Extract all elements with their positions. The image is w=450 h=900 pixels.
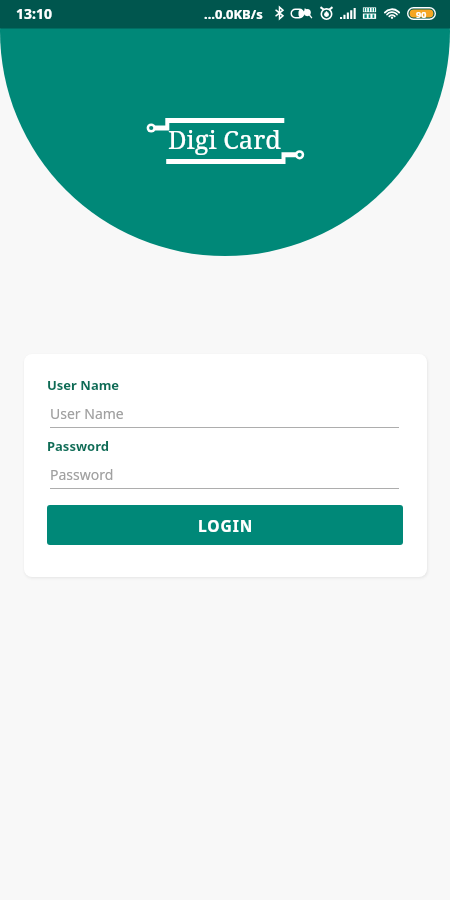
- staticText: Password: [47, 437, 109, 455]
- staticText: User Name: [50, 404, 124, 423]
- staticText: LOGIN: [198, 515, 254, 536]
- staticText: User Name: [47, 376, 120, 394]
- staticText: ...0.0KB/s: [204, 5, 263, 23]
- button[interactable]: Password: [50, 465, 399, 489]
- button[interactable]: User Name: [50, 404, 399, 428]
- button[interactable]: LOGIN: [47, 505, 403, 545]
- staticText: Password: [50, 465, 114, 484]
- staticText: 13:10: [16, 4, 52, 23]
- staticText: Digi Card: [168, 122, 281, 157]
- staticText: 90: [416, 8, 427, 20]
